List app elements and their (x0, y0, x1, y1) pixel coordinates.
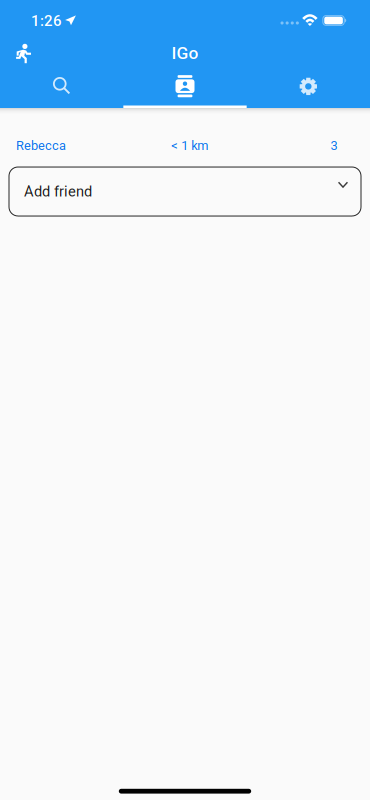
staticText: 3 (330, 138, 337, 153)
button[interactable]: Settings (247, 65, 370, 107)
staticText: Rebecca (16, 138, 66, 153)
staticText: 1:26 (31, 12, 62, 30)
staticText: < 1 km (171, 138, 208, 153)
staticText: Add friend (24, 183, 92, 200)
button[interactable]: Search (0, 65, 123, 107)
button[interactable]: Friends (123, 65, 247, 107)
staticText: IGo (171, 43, 198, 63)
button[interactable]: Start run (0, 31, 46, 75)
button[interactable]: Add friend (9, 167, 361, 216)
